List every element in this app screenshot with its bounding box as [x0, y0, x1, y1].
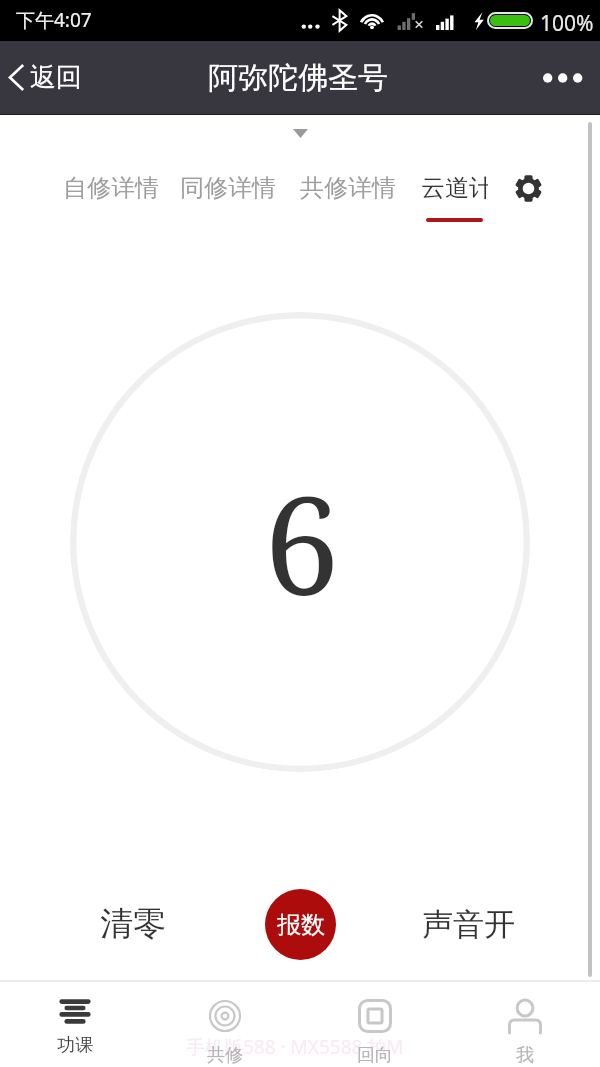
button[interactable]: Settings: [512, 172, 545, 205]
button[interactable]: 回向: [300, 982, 450, 1067]
button[interactable]: 云道计: [421, 173, 488, 229]
staticText: 手机版588 · MX5588 拍M: [186, 1034, 404, 1060]
staticText: 共修: [207, 1044, 243, 1067]
staticText: 阿弥陀佛圣号: [208, 59, 388, 97]
button[interactable]: 返回: [0, 51, 94, 104]
button[interactable]: 自修详情: [63, 173, 158, 229]
staticText: 6: [264, 451, 340, 635]
button[interactable]: More options: [529, 55, 600, 101]
button[interactable]: Counter, tap to count: [70, 312, 530, 772]
staticText: 自修详情: [63, 173, 158, 203]
button[interactable]: 功课: [0, 982, 150, 1067]
staticText: 下午4:07: [16, 7, 92, 33]
staticText: 返回: [30, 61, 82, 94]
button[interactable]: 共修: [150, 982, 300, 1067]
staticText: 同修详情: [180, 173, 275, 203]
staticText: 云道计: [421, 173, 488, 203]
button[interactable]: 报数: [265, 889, 336, 960]
staticText: 回向: [357, 1044, 393, 1067]
staticText: 报数: [277, 910, 325, 940]
button[interactable]: 同修详情: [180, 173, 275, 229]
button[interactable]: 共修详情: [300, 173, 395, 229]
staticText: 100%: [540, 9, 594, 38]
staticText: 功课: [57, 1034, 93, 1057]
staticText: 清零: [100, 903, 166, 945]
button[interactable]: 清零: [86, 890, 180, 958]
staticText: 我: [516, 1044, 534, 1067]
button[interactable]: 我: [450, 982, 600, 1067]
staticText: 声音开: [422, 905, 515, 944]
staticText: 共修详情: [300, 173, 395, 203]
button[interactable]: 声音开: [410, 890, 526, 958]
